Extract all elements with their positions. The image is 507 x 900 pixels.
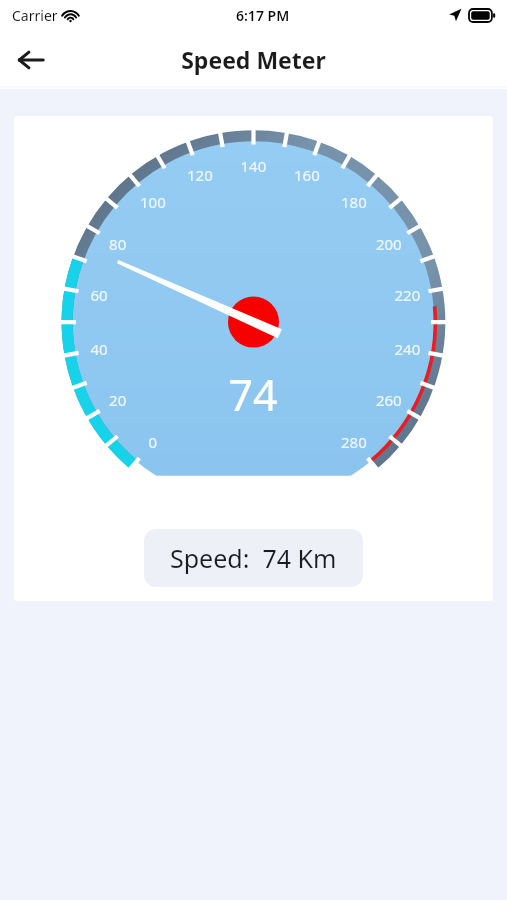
staticText: Speed: 74 Km xyxy=(170,541,337,575)
button[interactable]: Back xyxy=(9,38,53,82)
staticText: Carrier xyxy=(12,6,58,25)
staticText: Speed Meter xyxy=(181,44,326,75)
button[interactable]: Speed: 74 Km xyxy=(144,529,363,587)
staticText: 6:17 PM xyxy=(236,6,290,25)
